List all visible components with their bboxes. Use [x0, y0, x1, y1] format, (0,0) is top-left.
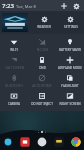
staticText: AIRPLANE MODE [58, 66, 82, 70]
button[interactable]: Add user [59, 1, 69, 11]
staticText: DND [39, 66, 46, 70]
button[interactable]: DND [28, 54, 56, 72]
button[interactable]: CAMERA [0, 90, 28, 108]
button[interactable]: AUTO-ROTATE [28, 72, 56, 90]
button[interactable]: Delta game [2, 13, 28, 32]
button[interactable]: Messaging [53, 136, 65, 148]
button[interactable]: NO SIM [28, 36, 56, 54]
staticText: 7:23 [2, 2, 14, 10]
button[interactable]: BLUETOOTH [0, 72, 28, 90]
button[interactable]: AIRPLANE MODE [56, 54, 84, 72]
staticText: CAMERA [8, 102, 20, 106]
button[interactable]: Phone [36, 136, 48, 148]
button[interactable]: Settings [71, 1, 81, 11]
staticText: WEATHER [37, 25, 51, 29]
button[interactable]: FLASHLIGHT [56, 72, 84, 90]
button[interactable]: Skype [2, 136, 14, 148]
staticText: AUTO-ROTATE [32, 84, 52, 88]
staticText: FLASHLIGHT [61, 84, 79, 88]
button[interactable]: BATTERY SAVER [56, 36, 84, 54]
staticText: NIGHT SCREEN [59, 102, 81, 106]
button[interactable]: SETTINGS [57, 11, 84, 34]
button[interactable]: YouTube [19, 136, 31, 148]
staticText: BATTERY SAVER [59, 48, 81, 52]
button[interactable]: NIGHT SCREEN [56, 90, 84, 108]
staticText: BLUETOOTH [5, 84, 23, 88]
button[interactable]: CAST SCREEN [0, 54, 28, 72]
button[interactable]: WI-FI [0, 36, 28, 54]
staticText: Tue, Mar 8 [16, 4, 36, 9]
staticText: CAST SCREEN [5, 66, 24, 70]
staticText: NO SIM [37, 48, 48, 52]
staticText: DO NOT INJECT [31, 102, 53, 106]
button[interactable]: WEATHER [31, 11, 57, 34]
staticText: SETTINGS [64, 25, 78, 29]
staticText: WI-FI [10, 48, 18, 52]
button[interactable]: Chrome [70, 136, 82, 148]
button[interactable]: DO NOT INJECT [28, 90, 56, 108]
